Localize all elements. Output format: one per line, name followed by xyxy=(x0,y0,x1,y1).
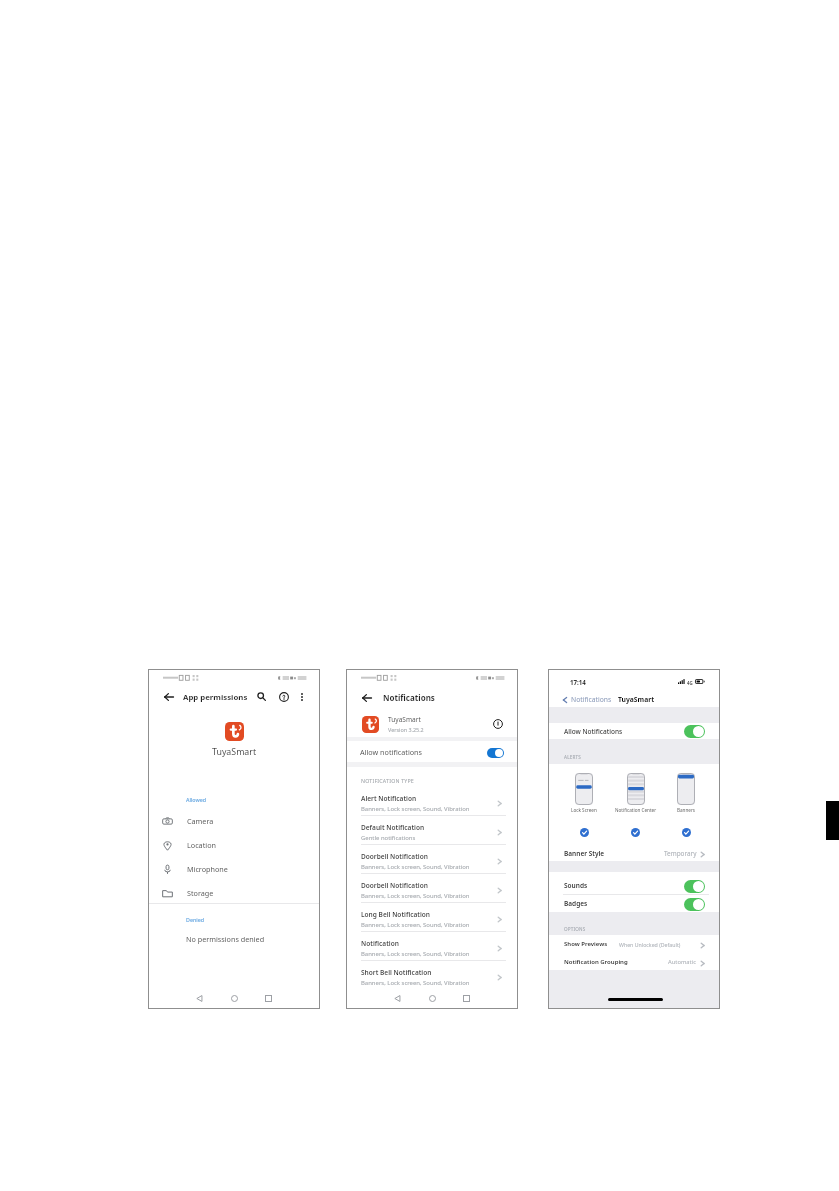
button[interactable]: Recents xyxy=(260,990,276,1006)
staticText: Allow notifications xyxy=(360,747,423,757)
staticText: Banners, Lock screen, Sound, Vibration xyxy=(361,950,470,958)
staticText: Banners, Lock screen, Sound, Vibration xyxy=(361,892,470,900)
button[interactable]: Search xyxy=(255,690,268,703)
button[interactable]: Back xyxy=(162,690,175,703)
staticText: Automatic xyxy=(668,958,696,966)
staticText: Temporary xyxy=(664,849,697,858)
button[interactable]: Toggle xyxy=(684,898,705,911)
button[interactable]: Back xyxy=(389,990,405,1006)
button[interactable] xyxy=(346,960,518,987)
button[interactable]: Banners xyxy=(664,773,708,813)
button[interactable] xyxy=(346,786,518,813)
staticText: Banners, Lock screen, Sound, Vibration xyxy=(361,979,470,987)
staticText: App permissions xyxy=(183,692,248,703)
staticText: Location xyxy=(187,840,216,850)
staticText: TuyaSmart xyxy=(618,695,655,704)
button[interactable] xyxy=(548,873,720,889)
staticText: Notification Grouping xyxy=(564,958,628,966)
staticText: Notifications xyxy=(571,695,612,704)
staticText: Lock Screen xyxy=(571,807,597,813)
staticText: Camera xyxy=(187,816,214,826)
button[interactable] xyxy=(346,931,518,958)
button[interactable]: Notification Center xyxy=(614,773,658,813)
staticText: Banners, Lock screen, Sound, Vibration xyxy=(361,805,470,813)
button[interactable] xyxy=(348,707,516,737)
staticText: Banners xyxy=(677,807,696,813)
staticText: Doorbell Notification xyxy=(361,852,428,861)
staticText: Notifications xyxy=(383,692,435,703)
button[interactable]: Toggle xyxy=(684,725,705,738)
button[interactable]: More options xyxy=(295,690,308,703)
button[interactable] xyxy=(548,723,720,739)
staticText: 4G xyxy=(687,680,693,686)
staticText: TuyaSmart xyxy=(388,715,421,724)
staticText: Doorbell Notification xyxy=(361,881,428,890)
other: App info xyxy=(492,718,504,730)
button[interactable] xyxy=(548,895,720,911)
button[interactable]: Notifications xyxy=(561,693,612,706)
staticText: Banners, Lock screen, Sound, Vibration xyxy=(361,921,470,929)
staticText: Denied xyxy=(186,916,205,923)
button[interactable]: Lock Screen xyxy=(562,773,606,813)
staticText: TuyaSmart xyxy=(212,746,257,758)
button[interactable]: Recents xyxy=(458,990,474,1006)
button[interactable] xyxy=(346,844,518,871)
button[interactable] xyxy=(548,954,720,971)
staticText: OPTIONS xyxy=(564,926,586,932)
staticText: Show Previews xyxy=(564,940,608,948)
button[interactable]: Camera xyxy=(161,809,316,833)
button[interactable] xyxy=(548,936,720,953)
staticText: Storage xyxy=(187,888,214,898)
staticText: Allow Notifications xyxy=(564,727,623,736)
button[interactable] xyxy=(346,742,518,761)
button[interactable] xyxy=(346,815,518,842)
button[interactable]: Back xyxy=(360,691,373,704)
staticText: When Unlocked (Default) xyxy=(619,941,681,948)
staticText: 17:14 xyxy=(570,678,586,686)
staticText: NOTIFICATION TYPE xyxy=(361,777,414,784)
button[interactable]: Help xyxy=(277,690,290,703)
staticText: Long Bell Notification xyxy=(361,910,431,919)
staticText: Banners, Lock screen, Sound, Vibration xyxy=(361,863,470,871)
staticText: Short Bell Notification xyxy=(361,968,432,977)
staticText: Default Notification xyxy=(361,823,425,832)
staticText: Notification xyxy=(361,939,399,948)
button[interactable] xyxy=(346,902,518,929)
staticText: Gentle notifications xyxy=(361,834,416,842)
button[interactable]: Back xyxy=(191,990,207,1006)
staticText: Notification Center xyxy=(615,807,657,813)
button[interactable]: Toggle xyxy=(684,880,705,893)
button[interactable]: Location xyxy=(161,833,316,857)
staticText: Microphone xyxy=(187,864,228,874)
staticText: ALERTS xyxy=(564,754,582,760)
button[interactable] xyxy=(548,845,720,861)
button[interactable]: Microphone xyxy=(161,857,316,881)
staticText: Alert Notification xyxy=(361,794,417,803)
button[interactable]: Allow notifications toggle xyxy=(487,748,504,758)
button[interactable]: Home xyxy=(226,990,242,1006)
button[interactable]: Storage xyxy=(161,881,316,905)
button[interactable]: Home xyxy=(424,990,440,1006)
staticText: Badges xyxy=(564,899,588,908)
button[interactable] xyxy=(346,873,518,900)
staticText: Sounds xyxy=(564,881,588,890)
staticText: No permissions denied xyxy=(186,934,265,944)
staticText: Allowed xyxy=(186,796,207,803)
staticText: Banner Style xyxy=(564,849,605,858)
staticText: Version 3.25.2 xyxy=(388,726,424,733)
